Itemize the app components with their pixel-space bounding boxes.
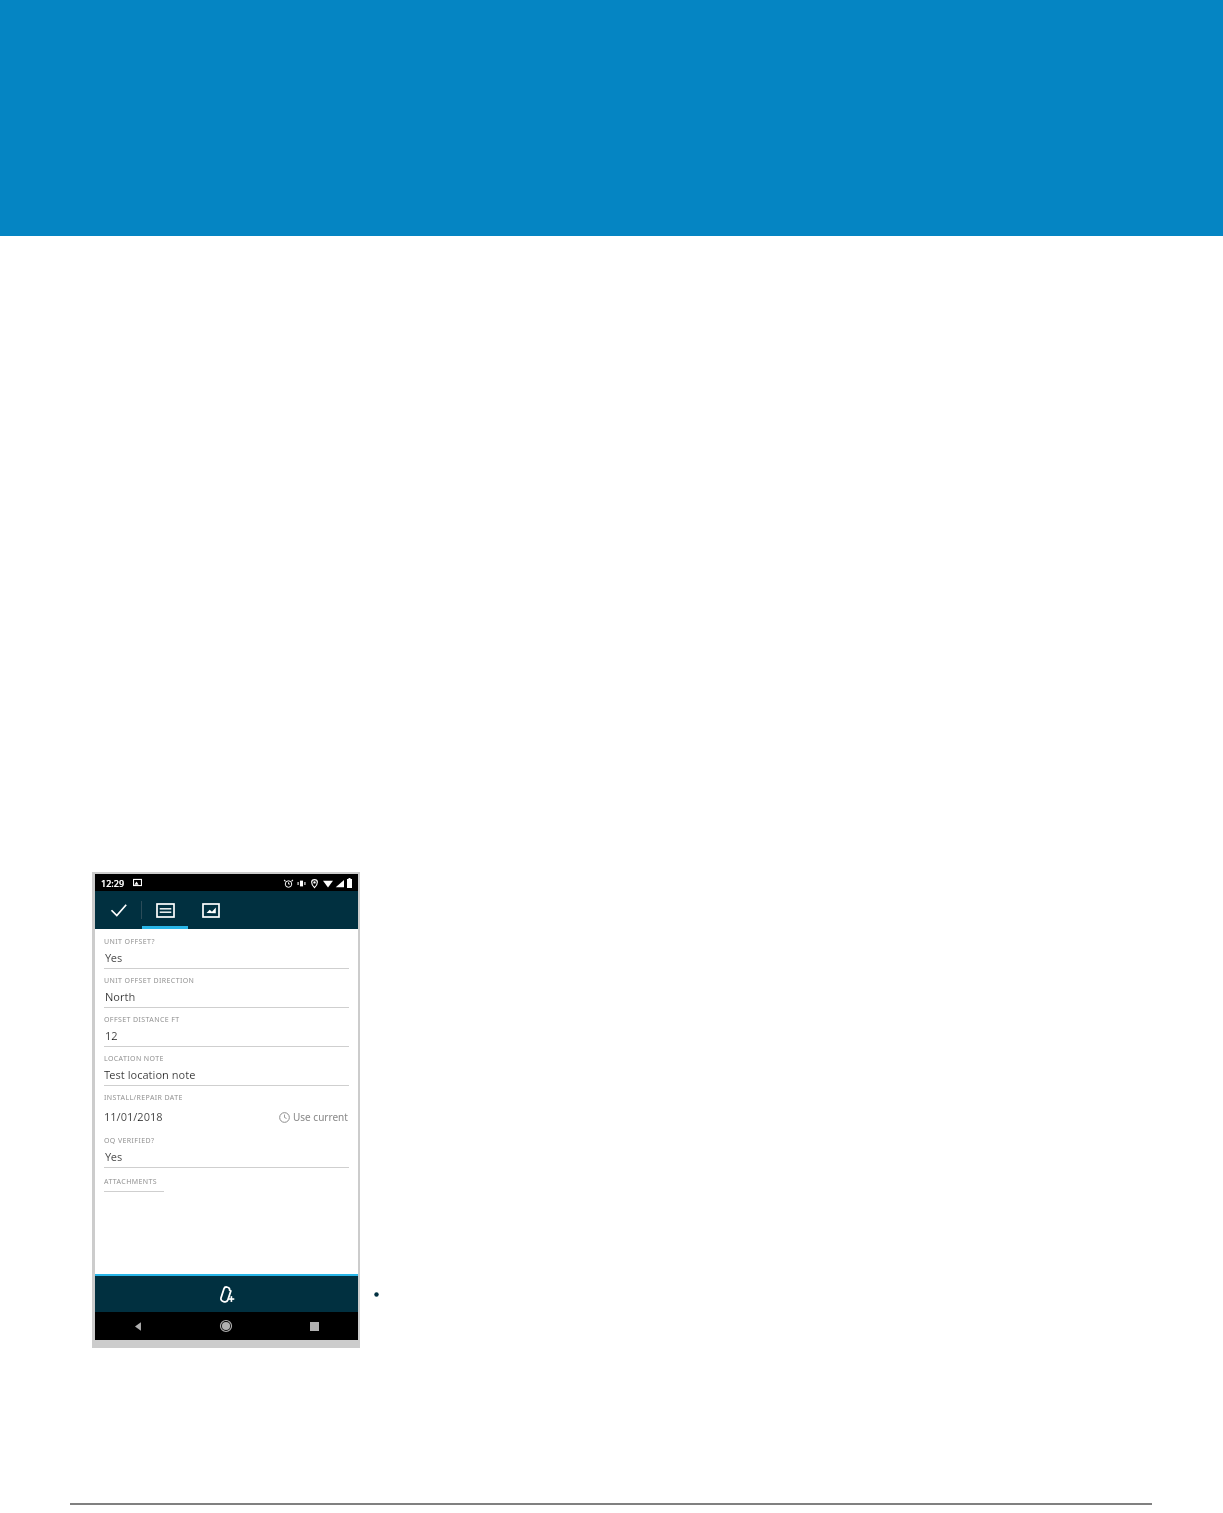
staticText: North bbox=[105, 989, 136, 1004]
button[interactable]: Recent apps bbox=[270, 1312, 358, 1340]
button[interactable]: UNIT OFFSET DIRECTION bbox=[95, 976, 358, 1015]
button[interactable]: Add attachment bbox=[182, 1276, 270, 1312]
staticText: OQ VERIFIED? bbox=[104, 1136, 155, 1146]
staticText: LOCATION NOTE bbox=[104, 1054, 164, 1064]
button[interactable]: Save bbox=[95, 891, 141, 929]
button[interactable]: UNIT OFFSET? bbox=[95, 937, 358, 976]
staticText: Test location note bbox=[104, 1067, 196, 1082]
staticText: ATTACHMENTS bbox=[104, 1177, 158, 1187]
staticText: 12:29 bbox=[101, 877, 125, 889]
staticText: OFFSET DISTANCE FT bbox=[104, 1015, 180, 1025]
button[interactable]: Use current bbox=[279, 1110, 348, 1124]
staticText: UNIT OFFSET DIRECTION bbox=[104, 976, 195, 986]
button[interactable]: LOCATION NOTE bbox=[95, 1054, 358, 1093]
button[interactable]: Back bbox=[95, 1312, 182, 1340]
staticText: UNIT OFFSET? bbox=[104, 937, 155, 947]
button[interactable]: Form bbox=[142, 891, 188, 929]
staticText: Yes bbox=[105, 950, 123, 965]
staticText: INSTALL/REPAIR DATE bbox=[104, 1093, 183, 1103]
staticText: Use current bbox=[293, 1110, 348, 1124]
button[interactable]: Home bbox=[182, 1312, 270, 1340]
button[interactable]: Map bbox=[188, 891, 234, 929]
staticText: 11/01/2018 bbox=[104, 1109, 163, 1124]
button[interactable]: 11/01/2018 bbox=[104, 1109, 163, 1124]
staticText: Yes bbox=[105, 1149, 123, 1164]
button[interactable]: OQ VERIFIED? bbox=[95, 1136, 358, 1175]
button[interactable]: OFFSET DISTANCE FT bbox=[95, 1015, 358, 1054]
staticText: 12 bbox=[105, 1028, 118, 1043]
